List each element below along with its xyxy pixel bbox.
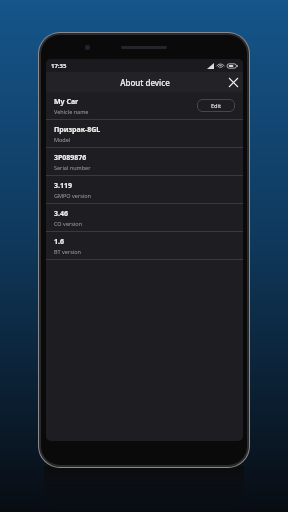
staticText: 3P089876 [54, 153, 87, 163]
staticText: CO version [54, 220, 83, 227]
staticText: 17:35 [51, 62, 67, 70]
staticText: Serial number [54, 164, 91, 171]
button[interactable]: 3.46 [46, 204, 243, 231]
staticText: 1.6 [54, 237, 64, 247]
staticText: Edit [211, 102, 222, 109]
staticText: GMPO version [54, 192, 91, 199]
staticText: About device [120, 77, 170, 88]
staticText: My Car [54, 97, 79, 107]
button[interactable]: 3P089876 [46, 148, 243, 175]
button[interactable]: 1.6 [46, 232, 243, 259]
staticText: 3.46 [54, 209, 68, 219]
button[interactable]: Призрак-8GL [46, 120, 243, 147]
button[interactable]: Edit [197, 99, 235, 112]
staticText: BT version [54, 248, 82, 255]
staticText: Призрак-8GL [54, 125, 101, 135]
staticText: Model [54, 136, 71, 143]
button[interactable]: 3.119 [46, 176, 243, 203]
button[interactable]: Close [223, 72, 243, 92]
button[interactable]: My Car [46, 92, 243, 119]
staticText: Vehicle name [54, 108, 89, 115]
staticText: 3.119 [54, 181, 72, 191]
